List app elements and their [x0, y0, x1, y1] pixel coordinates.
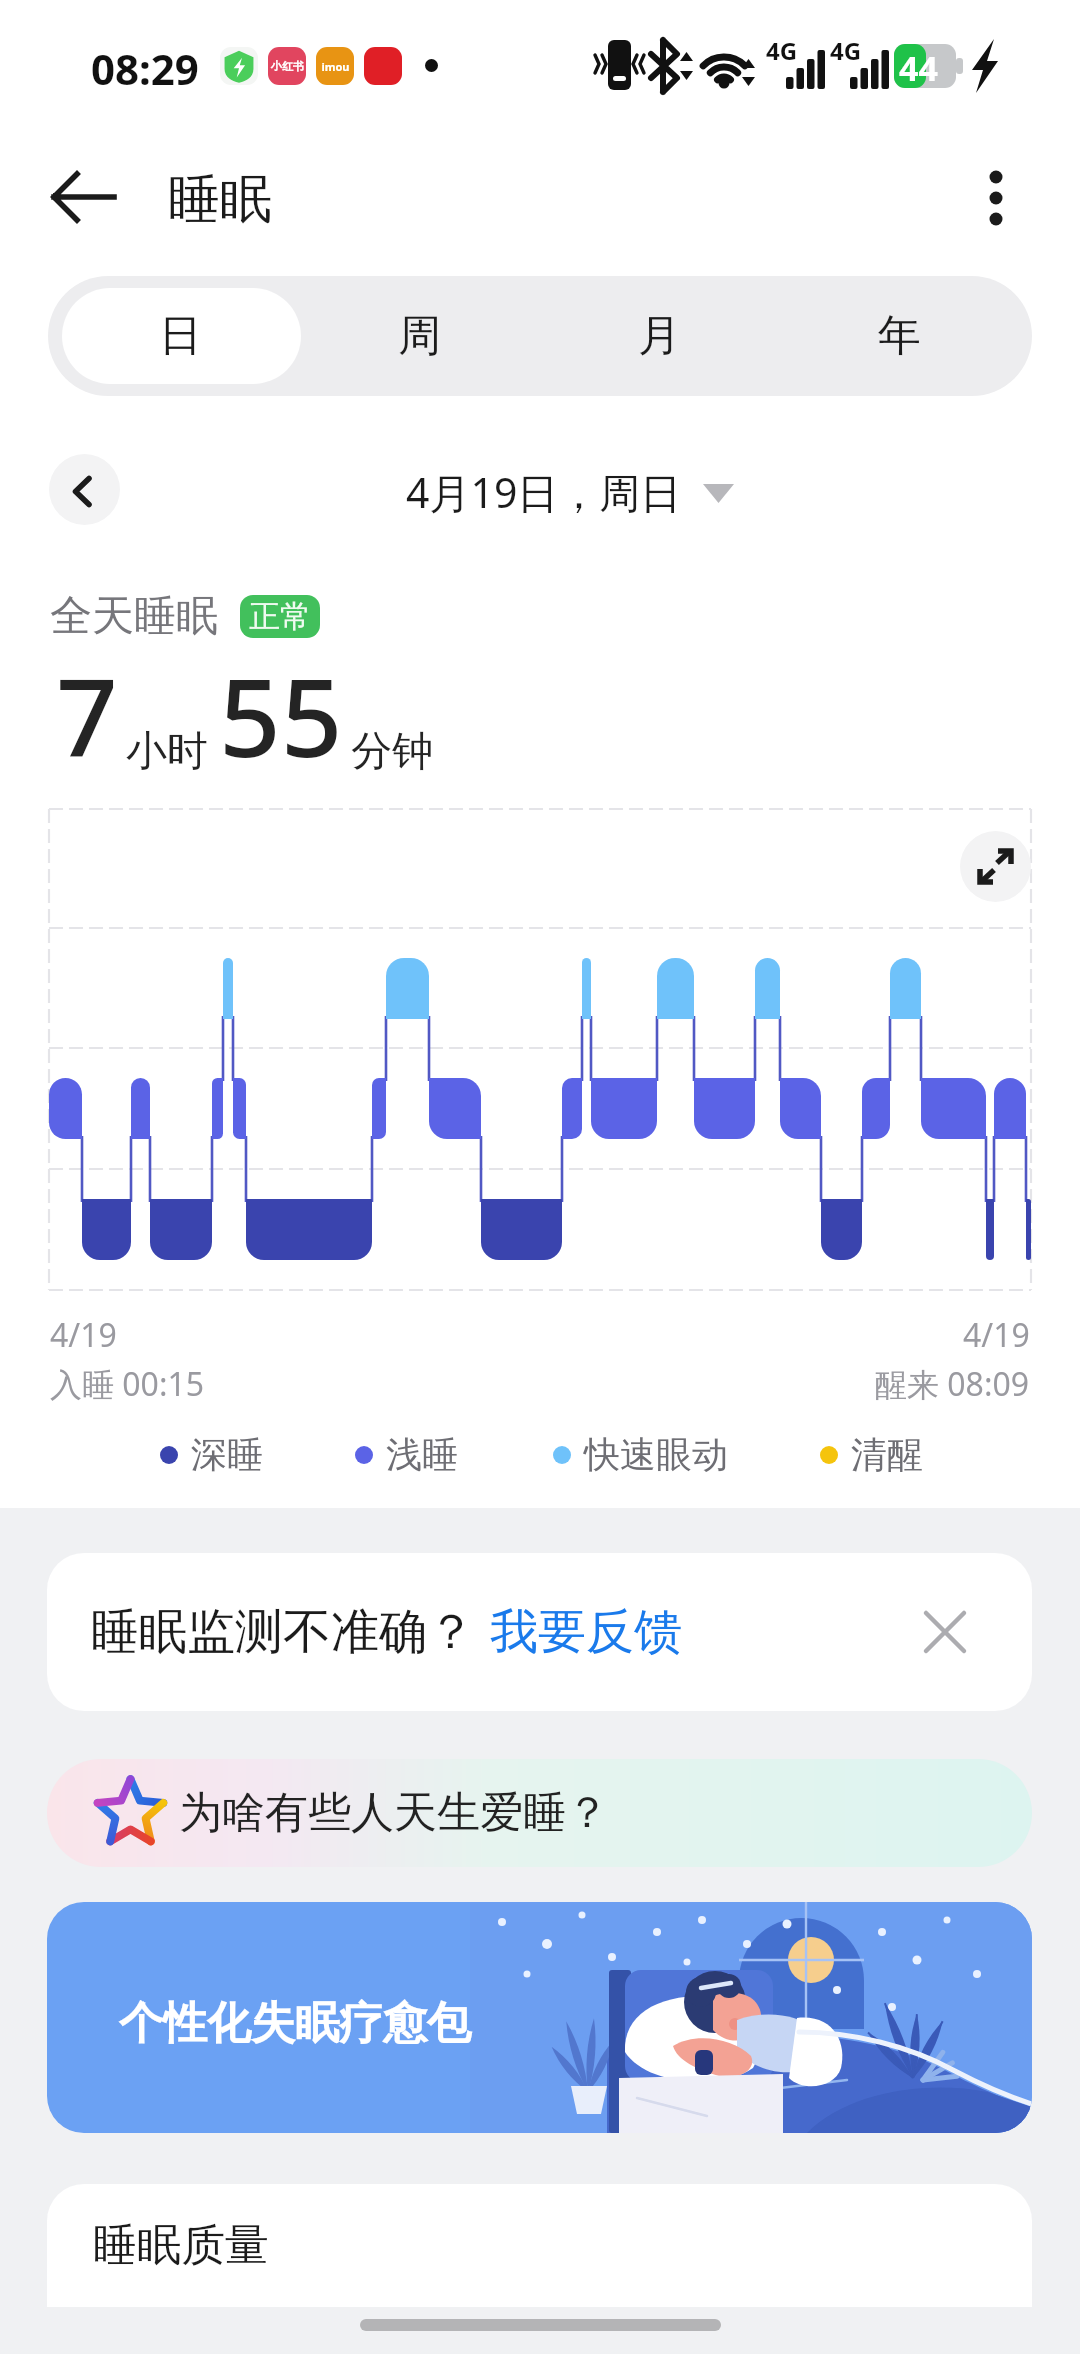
staticText: 入睡 00:15 [50, 1362, 205, 1406]
staticText: 周 [398, 309, 441, 363]
button[interactable]: 年 [779, 276, 1019, 396]
staticText: 正常 [249, 597, 311, 636]
staticText: 快速眼动 [584, 1432, 728, 1477]
button[interactable]: 周 [300, 276, 539, 396]
staticText: 醒来 08:09 [875, 1362, 1030, 1406]
staticText: 个性化失眠疗愈包 [119, 1996, 471, 2051]
staticText: imou [321, 59, 350, 74]
staticText: 月 [638, 309, 681, 363]
staticText: 7 [56, 642, 118, 789]
staticText: 我要反馈 [490, 1602, 682, 1662]
button[interactable]: 个性化失眠疗愈包 [47, 1902, 1032, 2133]
staticText: 深睡 [191, 1432, 263, 1477]
staticText: 分钟 [351, 726, 433, 778]
button[interactable]: 日 [61, 276, 300, 396]
staticText: 小时 [126, 726, 208, 778]
staticText: 日 [159, 309, 202, 363]
button[interactable]: Expand chart [960, 831, 1031, 902]
button[interactable]: More options [948, 149, 1044, 245]
button[interactable]: Back [34, 147, 134, 247]
staticText: 55 [219, 642, 343, 789]
button[interactable]: Close [913, 1600, 977, 1664]
staticText: 睡眠监测不准确？ [91, 1602, 475, 1662]
staticText: 清醒 [851, 1432, 923, 1477]
staticText: 4/19 [963, 1313, 1030, 1357]
button[interactable]: 月 [539, 276, 779, 396]
button[interactable]: 睡眠监测不准确？ [47, 1553, 1032, 1711]
staticText: 小红书 [271, 59, 304, 73]
staticText: 4G [766, 34, 798, 67]
button[interactable]: 4月19日，周日 [406, 454, 736, 530]
staticText: 08:29 [91, 40, 199, 97]
staticText: 浅睡 [386, 1432, 458, 1477]
staticText: 睡眠质量 [93, 2218, 269, 2273]
staticText: 睡眠 [168, 167, 272, 233]
button[interactable]: Previous day [49, 454, 120, 525]
button[interactable]: 睡眠质量 [47, 2184, 1032, 2307]
staticText: 年 [878, 309, 921, 363]
staticText: 4/19 [50, 1313, 117, 1357]
button[interactable]: 为啥有些人天生爱睡？ [47, 1759, 1032, 1867]
staticText: 全天睡眠 [50, 590, 218, 643]
staticText: 4月19日，周日 [406, 464, 682, 520]
staticText: 44 [899, 45, 938, 91]
staticText: 4G [830, 34, 862, 67]
staticText: 为啥有些人天生爱睡？ [179, 1786, 609, 1840]
